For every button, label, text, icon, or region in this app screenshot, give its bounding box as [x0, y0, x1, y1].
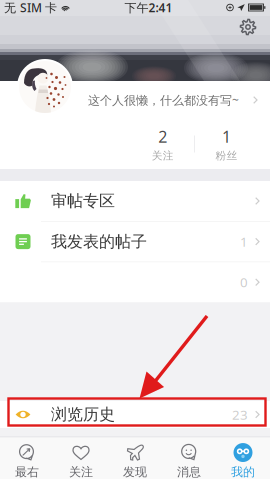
- staticText: 这个人很懒，什么都没有写~: [88, 92, 239, 108]
- button[interactable]: 这个人很懒，什么都没有写~: [0, 81, 270, 119]
- staticText: 粉丝: [215, 149, 237, 162]
- staticText: 1: [222, 126, 231, 147]
- button[interactable]: 1: [195, 119, 258, 169]
- staticText: 无 SIM 卡: [4, 0, 57, 15]
- button[interactable]: 我的: [216, 437, 270, 479]
- staticText: 0: [240, 273, 248, 291]
- staticText: 23: [232, 406, 248, 423]
- button[interactable]: 2: [131, 119, 194, 169]
- staticText: 下午2:41: [124, 0, 172, 15]
- button[interactable]: 消息: [162, 437, 216, 479]
- staticText: 关注: [69, 464, 93, 479]
- staticText: 2: [158, 126, 167, 147]
- button[interactable]: 关注: [54, 437, 108, 479]
- staticText: 审帖专区: [51, 191, 115, 211]
- staticText: 1: [240, 233, 248, 250]
- button[interactable]: 发现: [108, 437, 162, 479]
- staticText: 消息: [177, 464, 201, 479]
- button[interactable]: 浏览历史: [0, 401, 270, 428]
- staticText: 发现: [123, 464, 147, 479]
- staticText: 最右: [15, 464, 39, 479]
- staticText: 我发表的帖子: [51, 232, 147, 251]
- button[interactable]: Settings: [239, 15, 270, 36]
- button[interactable]: 最右: [0, 437, 54, 479]
- staticText: 我的: [231, 464, 255, 479]
- button[interactable]: 审帖专区: [0, 181, 270, 221]
- staticText: 关注: [152, 149, 174, 162]
- staticText: 浏览历史: [51, 405, 115, 424]
- button[interactable]: 我发表的帖子: [0, 222, 270, 262]
